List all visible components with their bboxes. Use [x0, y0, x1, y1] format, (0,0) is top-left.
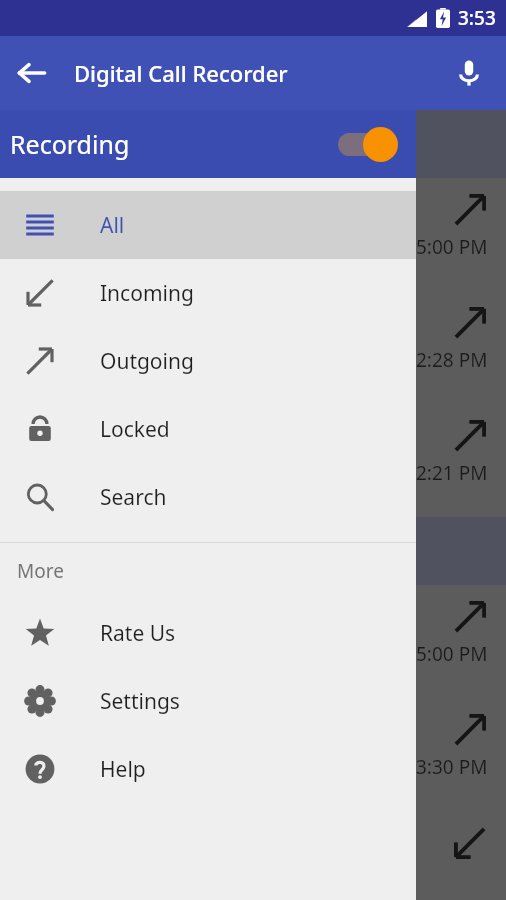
button[interactable]: Settings: [0, 667, 416, 735]
button[interactable]: 2:21 PM: [416, 404, 506, 517]
staticText: More: [17, 558, 64, 584]
staticText: Outgoing: [100, 347, 194, 376]
button[interactable]: Record: [432, 36, 506, 110]
button[interactable]: Rate Us: [0, 599, 416, 667]
staticText: Digital Call Recorder: [74, 58, 288, 88]
button[interactable]: Incoming: [0, 259, 416, 327]
staticText: 3:30 PM: [416, 754, 488, 780]
staticText: Search: [100, 483, 167, 512]
button[interactable]: All: [0, 191, 416, 259]
button[interactable]: 5:00 PM: [416, 585, 506, 698]
staticText: 2:28 PM: [416, 347, 488, 373]
staticText: 5:00 PM: [416, 641, 488, 667]
staticText: Locked: [100, 415, 170, 444]
button[interactable]: 5:00 PM: [416, 178, 506, 291]
button[interactable]: Help: [0, 735, 416, 803]
button[interactable]: [416, 811, 506, 900]
staticText: Settings: [100, 687, 180, 716]
button[interactable]: 3:30 PM: [416, 698, 506, 811]
button[interactable]: Locked: [0, 395, 416, 463]
button[interactable]: 2:28 PM: [416, 291, 506, 404]
button[interactable]: Search: [0, 463, 416, 531]
staticText: Rate Us: [100, 619, 176, 648]
staticText: Help: [100, 755, 146, 784]
button[interactable]: Recording: [0, 110, 416, 178]
staticText: 2:21 PM: [416, 460, 488, 486]
staticText: Recording: [10, 127, 334, 161]
staticText: All: [100, 211, 125, 240]
button[interactable]: Outgoing: [0, 327, 416, 395]
staticText: 3:53: [458, 5, 496, 31]
staticText: Incoming: [100, 279, 194, 308]
button[interactable]: Back: [0, 41, 64, 105]
staticText: 5:00 PM: [416, 234, 488, 260]
